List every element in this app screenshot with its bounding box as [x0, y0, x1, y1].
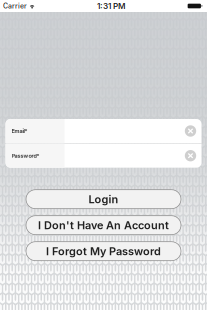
button[interactable]: I Don't Have An Account [26, 216, 181, 235]
staticText: 1:31 PM [97, 1, 126, 11]
staticText: Carrier [3, 2, 27, 10]
button[interactable]: Clear text [179, 119, 201, 143]
button[interactable]: Clear text [179, 144, 201, 168]
staticText: I Don't Have An Account [38, 219, 169, 232]
staticText: Login [88, 193, 118, 206]
button[interactable]: Login [26, 190, 181, 209]
staticText: Password* [11, 152, 39, 159]
staticText: Email* [11, 128, 27, 134]
button[interactable]: I Forgot My Password [26, 242, 181, 261]
staticText: I Forgot My Password [46, 245, 161, 258]
